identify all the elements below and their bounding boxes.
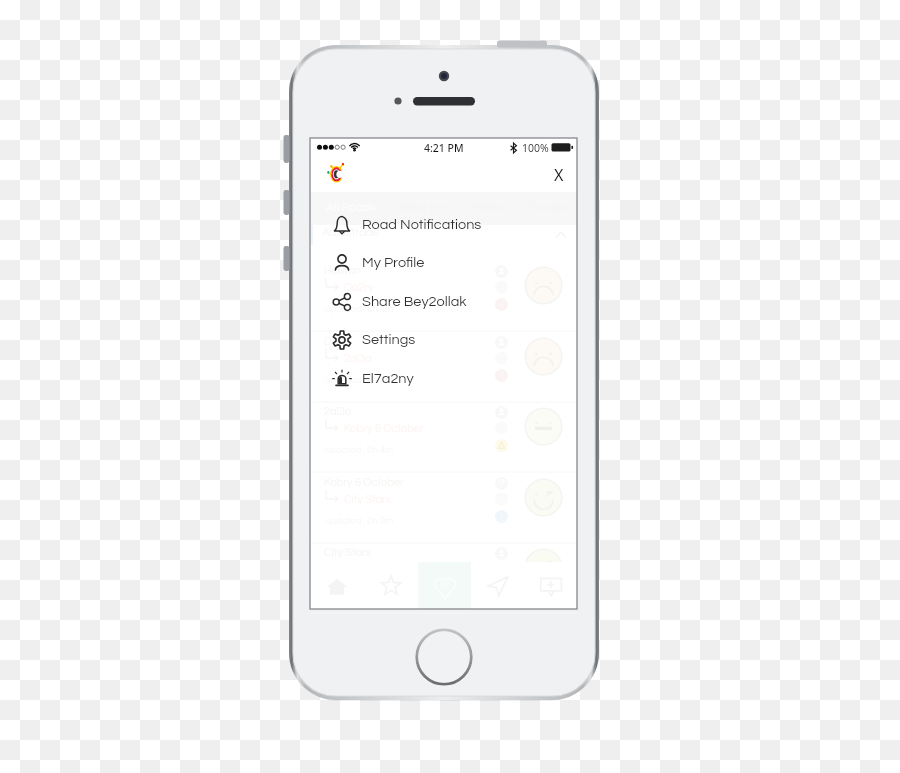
button[interactable]: Map bbox=[418, 562, 471, 609]
staticText: Kobry 6 October bbox=[324, 477, 404, 488]
staticText: Road Notifications bbox=[362, 217, 482, 232]
staticText: 100% bbox=[522, 141, 549, 155]
staticText: Helwan bbox=[324, 265, 361, 276]
button[interactable]: Road Notifications bbox=[310, 205, 577, 244]
staticText: City Stars bbox=[324, 547, 372, 558]
button[interactable]: Share Bey2ollak bbox=[310, 282, 577, 321]
staticText: 4:21 PM bbox=[424, 141, 464, 155]
button[interactable]: El7a2ny bbox=[310, 359, 577, 398]
button[interactable]: Navigate bbox=[471, 562, 524, 609]
staticText: My Profile bbox=[362, 255, 425, 270]
staticText: Autostrade bbox=[322, 227, 380, 239]
staticText: Kobry 6 October bbox=[344, 423, 424, 434]
staticText: 2al3a bbox=[324, 406, 352, 417]
staticText: Da2ry bbox=[344, 282, 374, 293]
staticText: X bbox=[554, 164, 564, 186]
button[interactable]: Favourites bbox=[364, 562, 418, 609]
staticText: Settings bbox=[362, 332, 416, 347]
staticText: 2al3a bbox=[344, 353, 372, 364]
staticText: updated : 0h 4m bbox=[325, 304, 394, 314]
button[interactable]: Home bbox=[310, 562, 364, 609]
button[interactable]: Settings bbox=[310, 320, 577, 359]
button[interactable]: My Profile bbox=[310, 243, 577, 282]
staticText: El7a2ny bbox=[362, 371, 414, 386]
staticText: Darb bbox=[324, 336, 349, 347]
staticText: updated : 0h 4m bbox=[325, 375, 394, 385]
staticText: Share Bey2ollak bbox=[362, 294, 467, 309]
button[interactable]: Close menu bbox=[545, 161, 573, 189]
staticText: City Stars bbox=[344, 494, 392, 505]
button[interactable]: Report bbox=[524, 562, 577, 609]
